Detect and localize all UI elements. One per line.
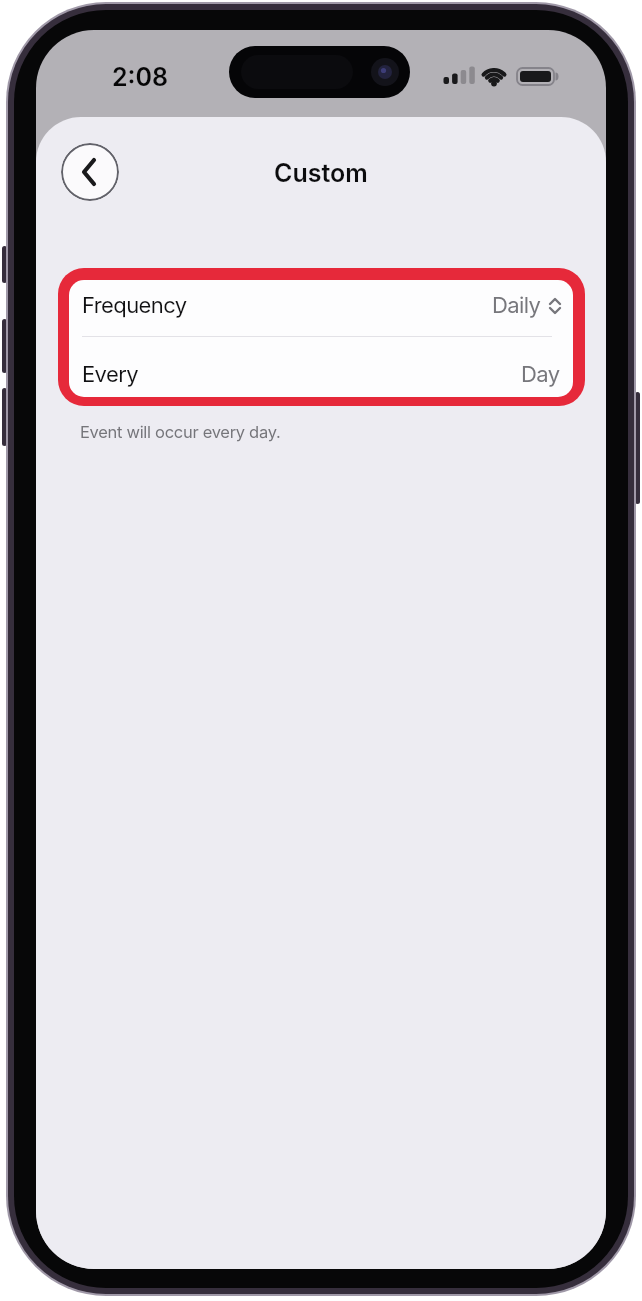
button[interactable]	[61, 143, 119, 201]
button[interactable]: Frequency	[69, 280, 573, 334]
staticText: Day	[521, 361, 560, 388]
staticText: Custom	[274, 158, 368, 188]
staticText: Frequency	[82, 292, 187, 319]
button[interactable]: Every	[69, 346, 573, 397]
staticText: 2:08	[112, 62, 169, 92]
staticText: Every	[82, 361, 138, 388]
staticText: Daily	[492, 292, 541, 319]
staticText: Event will occur every day.	[80, 422, 281, 442]
